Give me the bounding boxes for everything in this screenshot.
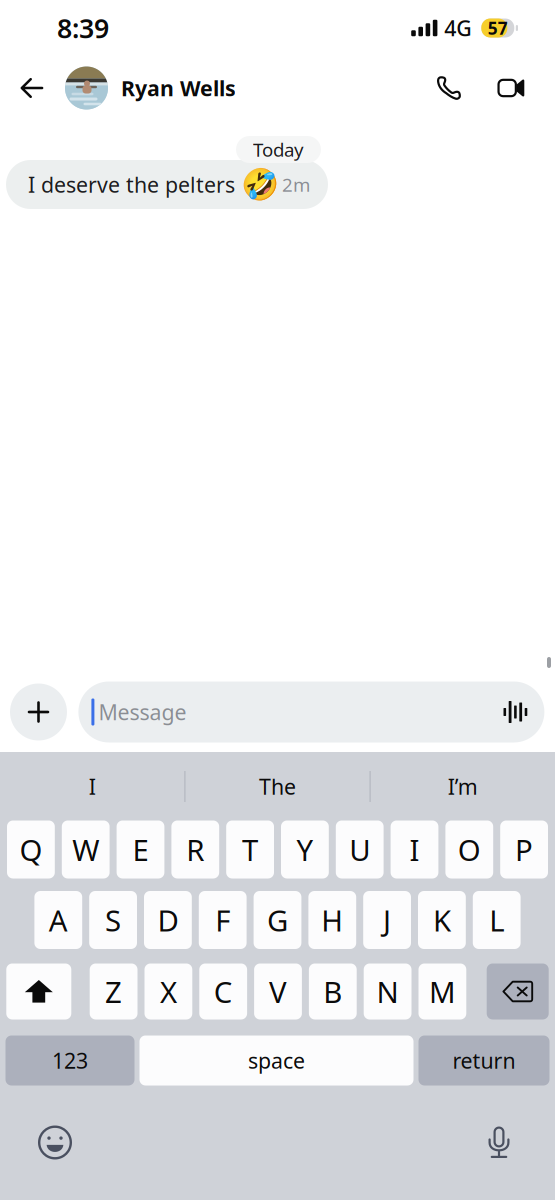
button[interactable]: Voice call [427, 66, 471, 110]
button[interactable] [6, 963, 71, 1019]
button[interactable]: space [139, 1035, 413, 1085]
button[interactable]: 123 [5, 1035, 134, 1085]
button[interactable]: J [363, 891, 411, 949]
staticText: I deserve the pelters [28, 170, 235, 199]
staticText: Ryan Wells [121, 74, 236, 102]
button[interactable]: The [185, 763, 369, 809]
staticText: C [214, 972, 233, 1011]
button[interactable]: X [144, 963, 192, 1019]
button[interactable] [487, 963, 549, 1019]
staticText: 123 [52, 1046, 88, 1075]
button[interactable]: I’m [371, 763, 555, 809]
staticText: M [429, 972, 456, 1011]
staticText: The [259, 772, 296, 801]
button[interactable]: F [199, 891, 247, 949]
staticText: 🤣 [241, 167, 279, 202]
button[interactable]: B [309, 963, 357, 1019]
staticText: V [269, 972, 287, 1011]
staticText: T [242, 830, 258, 869]
button[interactable]: Back [10, 66, 54, 110]
staticText: I [89, 772, 96, 801]
button[interactable]: A [34, 891, 82, 949]
staticText: B [323, 972, 342, 1011]
button[interactable]: N [364, 963, 411, 1019]
button[interactable]: Video call [489, 66, 533, 110]
staticText: Message [98, 698, 186, 726]
button[interactable]: L [473, 891, 521, 949]
button[interactable]: G [254, 891, 301, 949]
staticText: 8:39 [57, 10, 109, 46]
staticText: A [49, 900, 68, 939]
staticText: R [186, 830, 204, 869]
staticText: I’m [448, 772, 478, 801]
button[interactable]: E [117, 820, 164, 878]
button[interactable]: Z [90, 963, 137, 1019]
button[interactable]: I [391, 820, 438, 878]
staticText: O [458, 830, 481, 869]
button[interactable]: R [171, 820, 219, 878]
button[interactable]: Q [7, 820, 55, 878]
button[interactable]: O [445, 820, 493, 878]
staticText: P [515, 830, 533, 869]
staticText: F [215, 900, 230, 939]
button[interactable]: Dictation [473, 1116, 525, 1168]
staticText: G [267, 900, 288, 939]
staticText: return [452, 1046, 515, 1075]
staticText: I [409, 830, 419, 869]
staticText: Y [296, 830, 313, 869]
button[interactable]: W [62, 820, 110, 878]
button[interactable]: P [500, 820, 548, 878]
staticText: space [248, 1046, 305, 1075]
button[interactable]: K [418, 891, 466, 949]
staticText: L [489, 900, 504, 939]
button[interactable]: V [254, 963, 302, 1019]
staticText: N [377, 972, 399, 1011]
button[interactable]: I [0, 763, 184, 809]
button[interactable]: U [336, 820, 384, 878]
staticText: Today [253, 137, 304, 162]
staticText: K [433, 900, 451, 939]
staticText: J [383, 900, 391, 939]
staticText: Q [19, 830, 42, 869]
button[interactable]: Record voice message [503, 700, 527, 724]
button[interactable]: H [308, 891, 356, 949]
staticText: Z [105, 972, 122, 1011]
button[interactable]: M [418, 963, 466, 1019]
button[interactable]: T [226, 820, 274, 878]
staticText: X [160, 972, 177, 1011]
button[interactable]: D [144, 891, 192, 949]
staticText: 2m [282, 172, 310, 197]
staticText: H [321, 900, 343, 939]
button[interactable]: Add attachment [10, 683, 67, 740]
button[interactable]: C [199, 963, 247, 1019]
staticText: 57 [488, 16, 508, 39]
button[interactable]: Emoji keyboard [29, 1116, 81, 1168]
button[interactable]: return [418, 1035, 549, 1085]
staticText: U [349, 830, 370, 869]
staticText: E [132, 830, 148, 869]
staticText: 4G [444, 14, 472, 42]
button[interactable]: S [89, 891, 137, 949]
staticText: S [105, 900, 121, 939]
staticText: W [72, 830, 99, 869]
button[interactable]: Y [281, 820, 329, 878]
staticText: D [157, 900, 178, 939]
